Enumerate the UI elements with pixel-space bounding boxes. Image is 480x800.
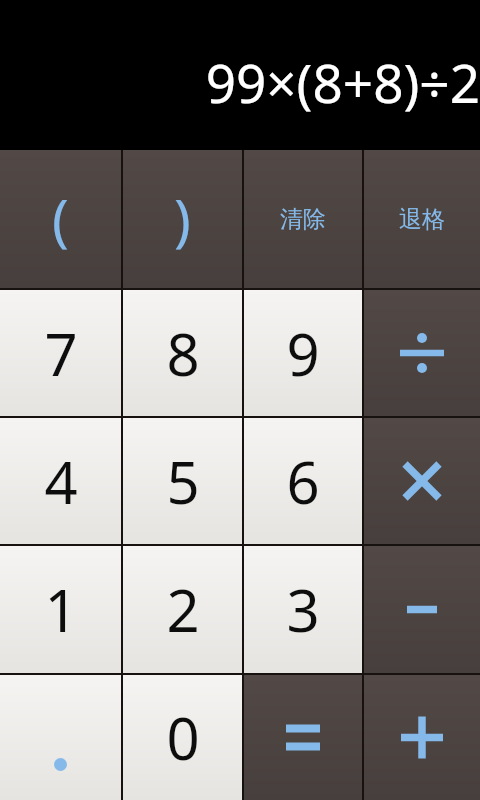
button[interactable]: 7 xyxy=(0,290,121,416)
staticText: 1 xyxy=(44,570,78,649)
button[interactable]: 0 xyxy=(123,675,242,800)
staticText: 7 xyxy=(44,314,78,393)
button[interactable]: Multiply xyxy=(364,418,480,544)
button[interactable]: 5 xyxy=(123,418,242,544)
button[interactable]: Divide xyxy=(364,290,480,416)
button[interactable]: Equals xyxy=(244,675,362,800)
staticText: 6 xyxy=(286,442,320,521)
staticText: ) xyxy=(174,181,191,257)
staticText: 0 xyxy=(166,698,200,777)
button[interactable]: 4 xyxy=(0,418,121,544)
staticText: 9 xyxy=(286,314,320,393)
button[interactable]: 2 xyxy=(123,546,242,673)
staticText: 4 xyxy=(44,442,78,521)
button[interactable]: Plus xyxy=(364,675,480,800)
staticText: 5 xyxy=(166,442,200,521)
button[interactable]: 退格 xyxy=(364,150,480,288)
button[interactable]: 8 xyxy=(123,290,242,416)
staticText: 3 xyxy=(286,570,320,649)
button[interactable]: Close parenthesis xyxy=(123,150,242,288)
button[interactable]: Decimal point xyxy=(0,675,121,800)
staticText: 8 xyxy=(166,314,200,393)
staticText: 清除 xyxy=(280,205,326,234)
button[interactable]: 6 xyxy=(244,418,362,544)
button[interactable]: Minus xyxy=(364,546,480,673)
button[interactable]: 1 xyxy=(0,546,121,673)
staticText: 退格 xyxy=(399,205,445,234)
staticText: 99×(8+8)÷2 xyxy=(205,46,480,118)
button[interactable]: 3 xyxy=(244,546,362,673)
staticText: 2 xyxy=(166,570,200,649)
button[interactable]: Open parenthesis xyxy=(0,150,121,288)
button[interactable]: 9 xyxy=(244,290,362,416)
staticText: ( xyxy=(52,181,69,257)
button[interactable]: 清除 xyxy=(244,150,362,288)
